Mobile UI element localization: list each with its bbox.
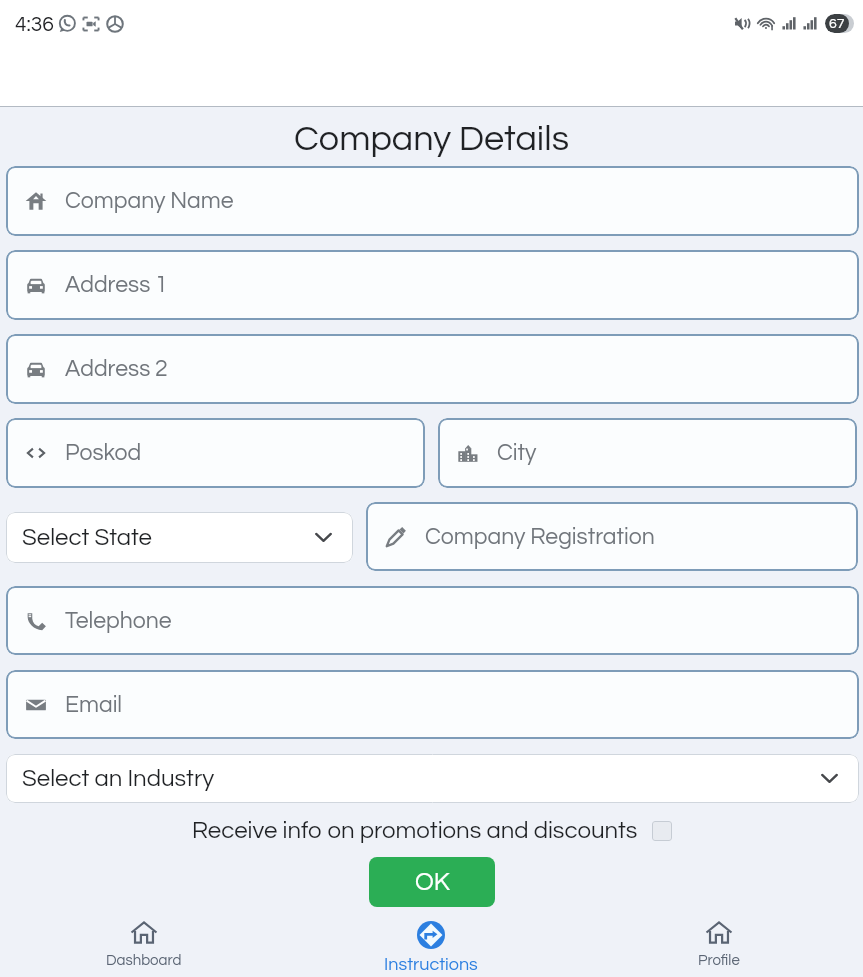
staticText: Profile <box>698 953 740 968</box>
staticText: Company Registration <box>425 525 655 549</box>
staticText: Select an Industry <box>22 766 215 791</box>
button[interactable]: OK <box>369 857 495 907</box>
button[interactable]: Instructions <box>287 909 575 974</box>
button[interactable]: Receive promotions checkbox <box>652 821 672 841</box>
button[interactable]: Profile <box>575 909 863 968</box>
staticText: Select State <box>22 525 152 550</box>
staticText: Email <box>65 693 123 717</box>
button[interactable]: Poskod <box>6 418 425 488</box>
button[interactable]: Company Registration <box>366 502 858 571</box>
staticText: 4:36 <box>15 14 54 36</box>
button[interactable]: Email <box>6 670 859 739</box>
button[interactable]: City <box>438 418 857 488</box>
staticText: Address 1 <box>65 273 168 297</box>
button[interactable]: Address 2 <box>6 334 859 404</box>
staticText: Instructions <box>384 955 478 974</box>
button[interactable]: Address 1 <box>6 250 859 320</box>
staticText: 67 <box>829 17 845 31</box>
staticText: Receive info on promotions and discounts <box>192 818 638 843</box>
button[interactable]: Select an Industry <box>6 754 859 803</box>
staticText: Poskod <box>65 441 142 465</box>
staticText: OK <box>415 869 450 895</box>
staticText: Dashboard <box>106 953 182 968</box>
staticText: Address 2 <box>65 357 168 381</box>
staticText: City <box>497 441 537 465</box>
button[interactable]: Select State <box>6 512 353 563</box>
staticText: Company Details <box>0 120 863 157</box>
button[interactable]: Company Name <box>6 166 859 236</box>
staticText: Company Name <box>65 189 234 213</box>
button[interactable]: Dashboard <box>0 909 287 968</box>
button[interactable]: Telephone <box>6 586 859 655</box>
staticText: Telephone <box>65 609 172 633</box>
